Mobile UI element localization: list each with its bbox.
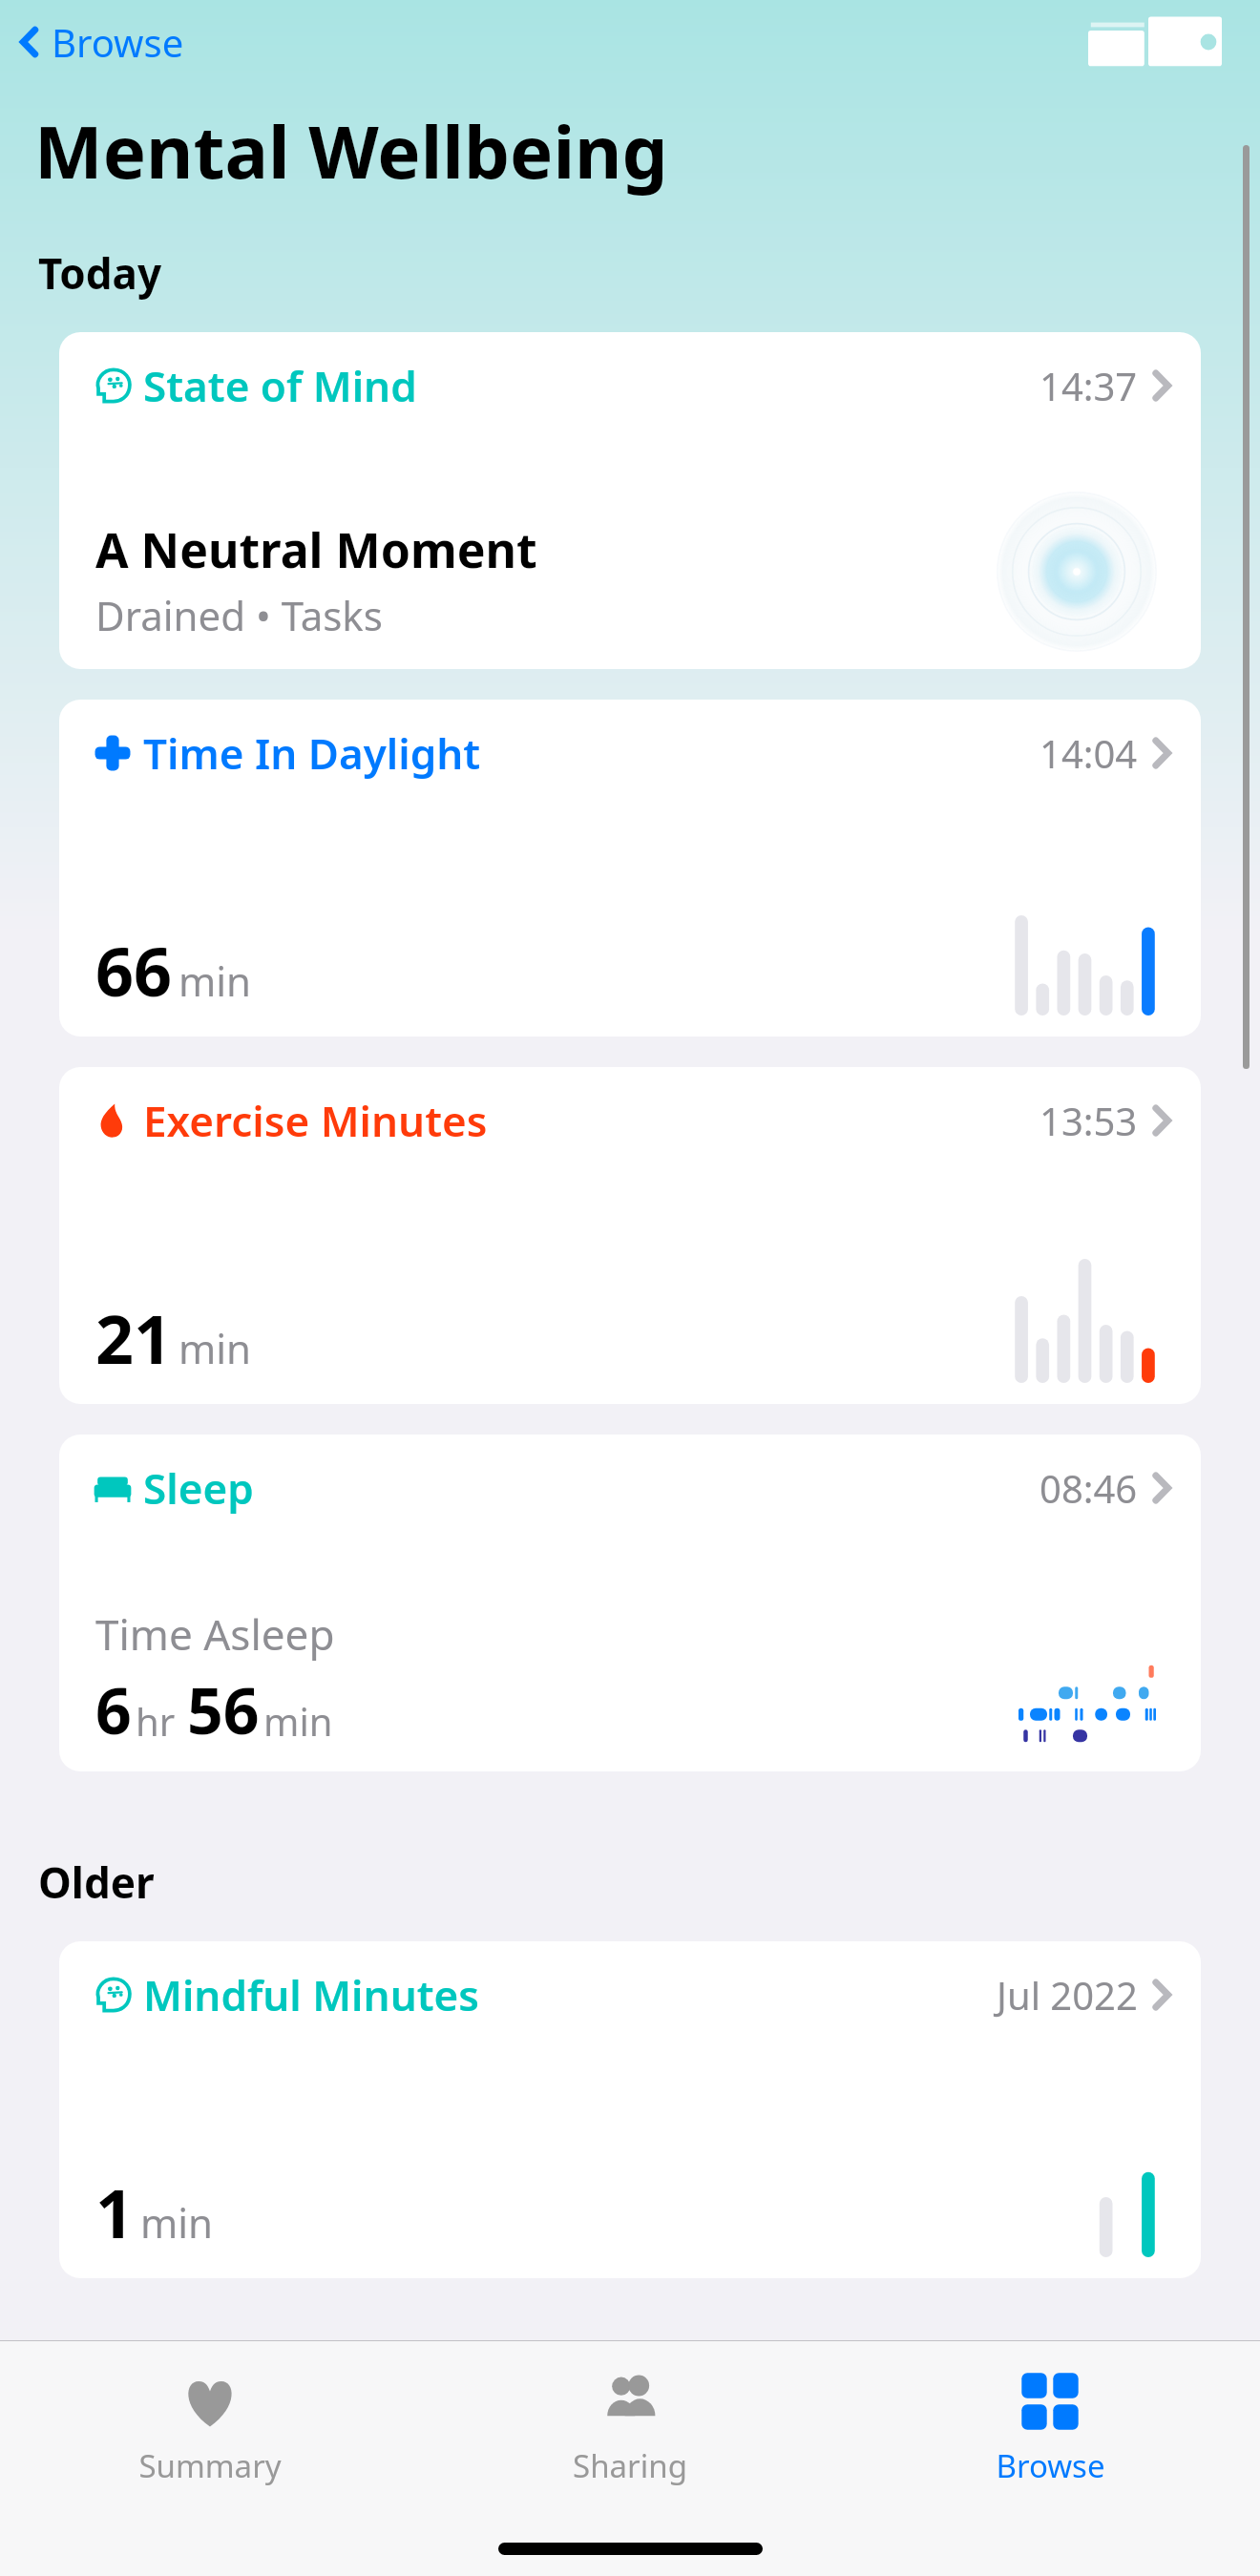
- staticText: Today: [38, 244, 162, 302]
- staticText: Sharing: [573, 2444, 687, 2487]
- staticText: Time Asleep: [95, 1605, 335, 1663]
- staticText: State of Mind: [143, 357, 417, 414]
- staticText: 13:53: [1039, 1095, 1138, 1146]
- staticText: Older: [38, 1853, 155, 1911]
- staticText: min: [178, 953, 252, 1008]
- staticText: Time In Daylight: [143, 724, 481, 782]
- staticText: 14:37: [1039, 360, 1138, 411]
- staticText: Browse: [996, 2444, 1105, 2487]
- staticText: 56: [187, 1666, 260, 1752]
- button[interactable]: Sleep: [59, 1435, 1201, 1771]
- staticText: Summary: [138, 2444, 282, 2487]
- staticText: Sleep: [143, 1459, 254, 1517]
- button[interactable]: Mindful Minutes: [59, 1941, 1201, 2278]
- staticText: Browse: [52, 16, 184, 68]
- button[interactable]: Time In Daylight: [59, 700, 1201, 1037]
- staticText: 21: [95, 1292, 173, 1383]
- staticText: 08:46: [1039, 1462, 1138, 1514]
- button[interactable]: Sharing: [420, 2362, 840, 2495]
- staticText: hr: [136, 1695, 176, 1747]
- button[interactable]: Browse: [0, 10, 196, 73]
- staticText: min: [263, 1695, 333, 1747]
- staticText: 1: [95, 2167, 135, 2257]
- staticText: Jul 2022: [997, 1969, 1138, 2021]
- staticText: min: [178, 1321, 252, 1375]
- staticText: 66: [95, 925, 173, 1016]
- staticText: Exercise Minutes: [143, 1092, 488, 1149]
- button[interactable]: State of Mind: [59, 332, 1201, 669]
- staticText: Mindful Minutes: [143, 1966, 479, 2023]
- button[interactable]: Summary: [0, 2362, 420, 2495]
- staticText: 6: [95, 1666, 132, 1752]
- staticText: Drained • Tasks: [95, 588, 383, 642]
- button[interactable]: Browse: [840, 2362, 1260, 2495]
- button[interactable]: Exercise Minutes: [59, 1067, 1201, 1404]
- staticText: 14:04: [1039, 727, 1138, 779]
- staticText: Mental Wellbeing: [34, 101, 668, 200]
- staticText: A Neutral Moment: [95, 517, 537, 582]
- staticText: min: [140, 2195, 214, 2250]
